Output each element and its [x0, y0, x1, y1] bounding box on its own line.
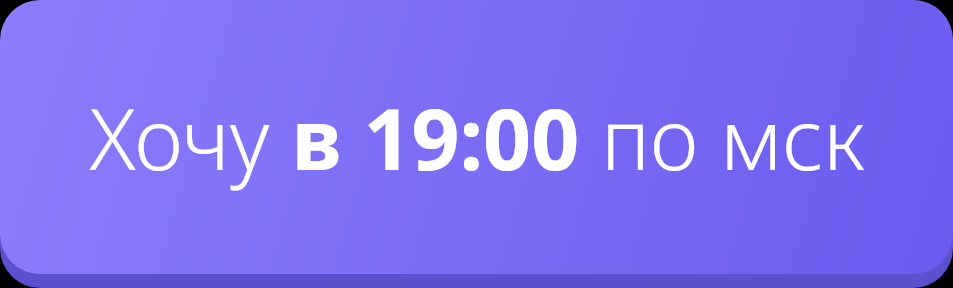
staticText: Хочу в 19:00 по мск	[89, 80, 865, 194]
button[interactable]: Хочу в 19:00 по мск	[0, 0, 953, 288]
